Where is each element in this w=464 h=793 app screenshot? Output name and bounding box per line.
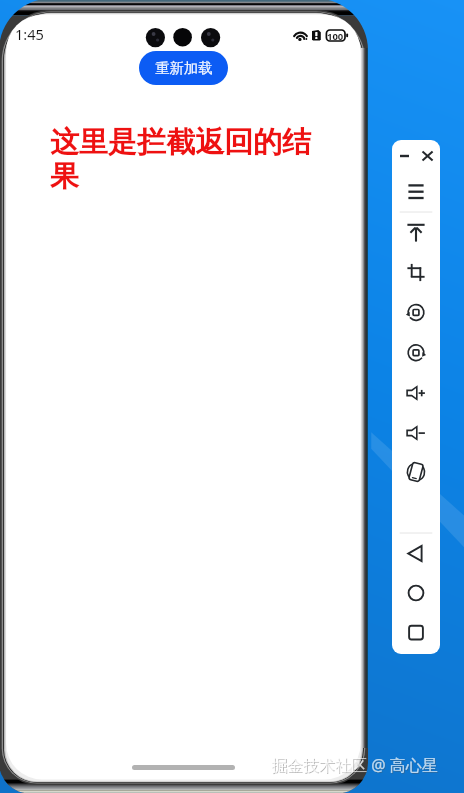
- button[interactable]: Recents: [402, 619, 430, 647]
- staticText: 100: [327, 30, 344, 41]
- staticText: 掘金技术社区 @ 高心星: [272, 755, 439, 777]
- button[interactable]: Home: [402, 579, 430, 607]
- button[interactable]: Menu: [402, 178, 430, 206]
- button[interactable]: Minimise: [402, 142, 430, 170]
- button[interactable]: Rotate left: [402, 298, 430, 326]
- button[interactable]: Rotate right: [402, 339, 430, 367]
- staticText: 重新加载: [155, 59, 213, 77]
- button[interactable]: Volume up: [402, 379, 430, 407]
- button[interactable]: Close: [420, 142, 440, 162]
- staticText: 这里是拦截返回的结果: [50, 124, 318, 195]
- button[interactable]: Tilt device: [402, 458, 430, 486]
- button[interactable]: 重新加载: [139, 51, 228, 85]
- button[interactable]: Power: [402, 219, 430, 247]
- button[interactable]: Volume down: [402, 419, 430, 447]
- staticText: 掘金技术社区 @ 高心星: [271, 754, 438, 776]
- button[interactable]: Screenshot: [402, 259, 430, 287]
- staticText: 1:45: [15, 24, 44, 44]
- button[interactable]: Back: [402, 540, 430, 568]
